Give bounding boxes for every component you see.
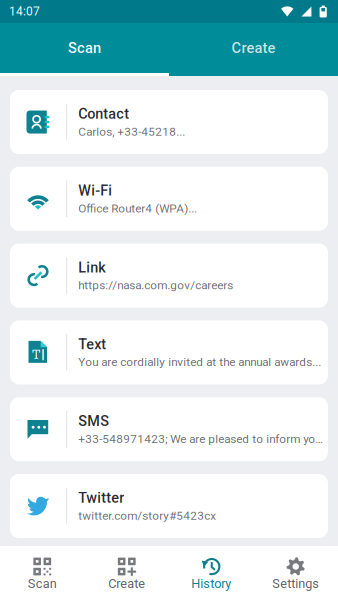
- staticText: Twitter: [78, 489, 124, 506]
- button[interactable]: SMS: [10, 397, 328, 461]
- staticText: Carlos, +33-45218...: [78, 125, 185, 139]
- staticText: Contact: [78, 105, 129, 122]
- button[interactable]: T: [10, 320, 328, 384]
- button[interactable]: Create: [169, 23, 338, 73]
- button[interactable]: Link: [10, 244, 328, 308]
- staticText: Scan: [28, 576, 57, 591]
- staticText: SMS: [78, 413, 109, 429]
- staticText: T: [32, 348, 41, 362]
- staticText: Create: [231, 39, 275, 57]
- staticText: twitter.com/story#5423cx: [78, 509, 216, 523]
- staticText: Wi-Fi: [78, 182, 112, 199]
- staticText: Create: [108, 576, 145, 591]
- button[interactable]: Scan: [0, 23, 169, 73]
- staticText: 14:07: [9, 4, 40, 19]
- staticText: https://nasa.com.gov/careers: [78, 278, 233, 292]
- button[interactable]: Settings: [253, 546, 338, 600]
- staticText: You are cordially invited at the annual …: [78, 355, 321, 369]
- button[interactable]: Wi-Fi: [10, 167, 328, 231]
- staticText: History: [191, 576, 231, 591]
- staticText: Text: [78, 336, 106, 353]
- staticText: Link: [78, 259, 106, 276]
- button[interactable]: Twitter: [10, 474, 328, 538]
- staticText: Settings: [272, 576, 319, 591]
- staticText: Scan: [68, 39, 101, 57]
- button[interactable]: Scan: [0, 546, 84, 600]
- staticText: +33-548971423; We are pleased to inform …: [78, 432, 328, 446]
- button[interactable]: Contact: [10, 90, 328, 154]
- button[interactable]: History: [169, 546, 253, 600]
- button[interactable]: Create: [84, 546, 169, 600]
- staticText: Office Router4 (WPA)...: [78, 202, 197, 215]
